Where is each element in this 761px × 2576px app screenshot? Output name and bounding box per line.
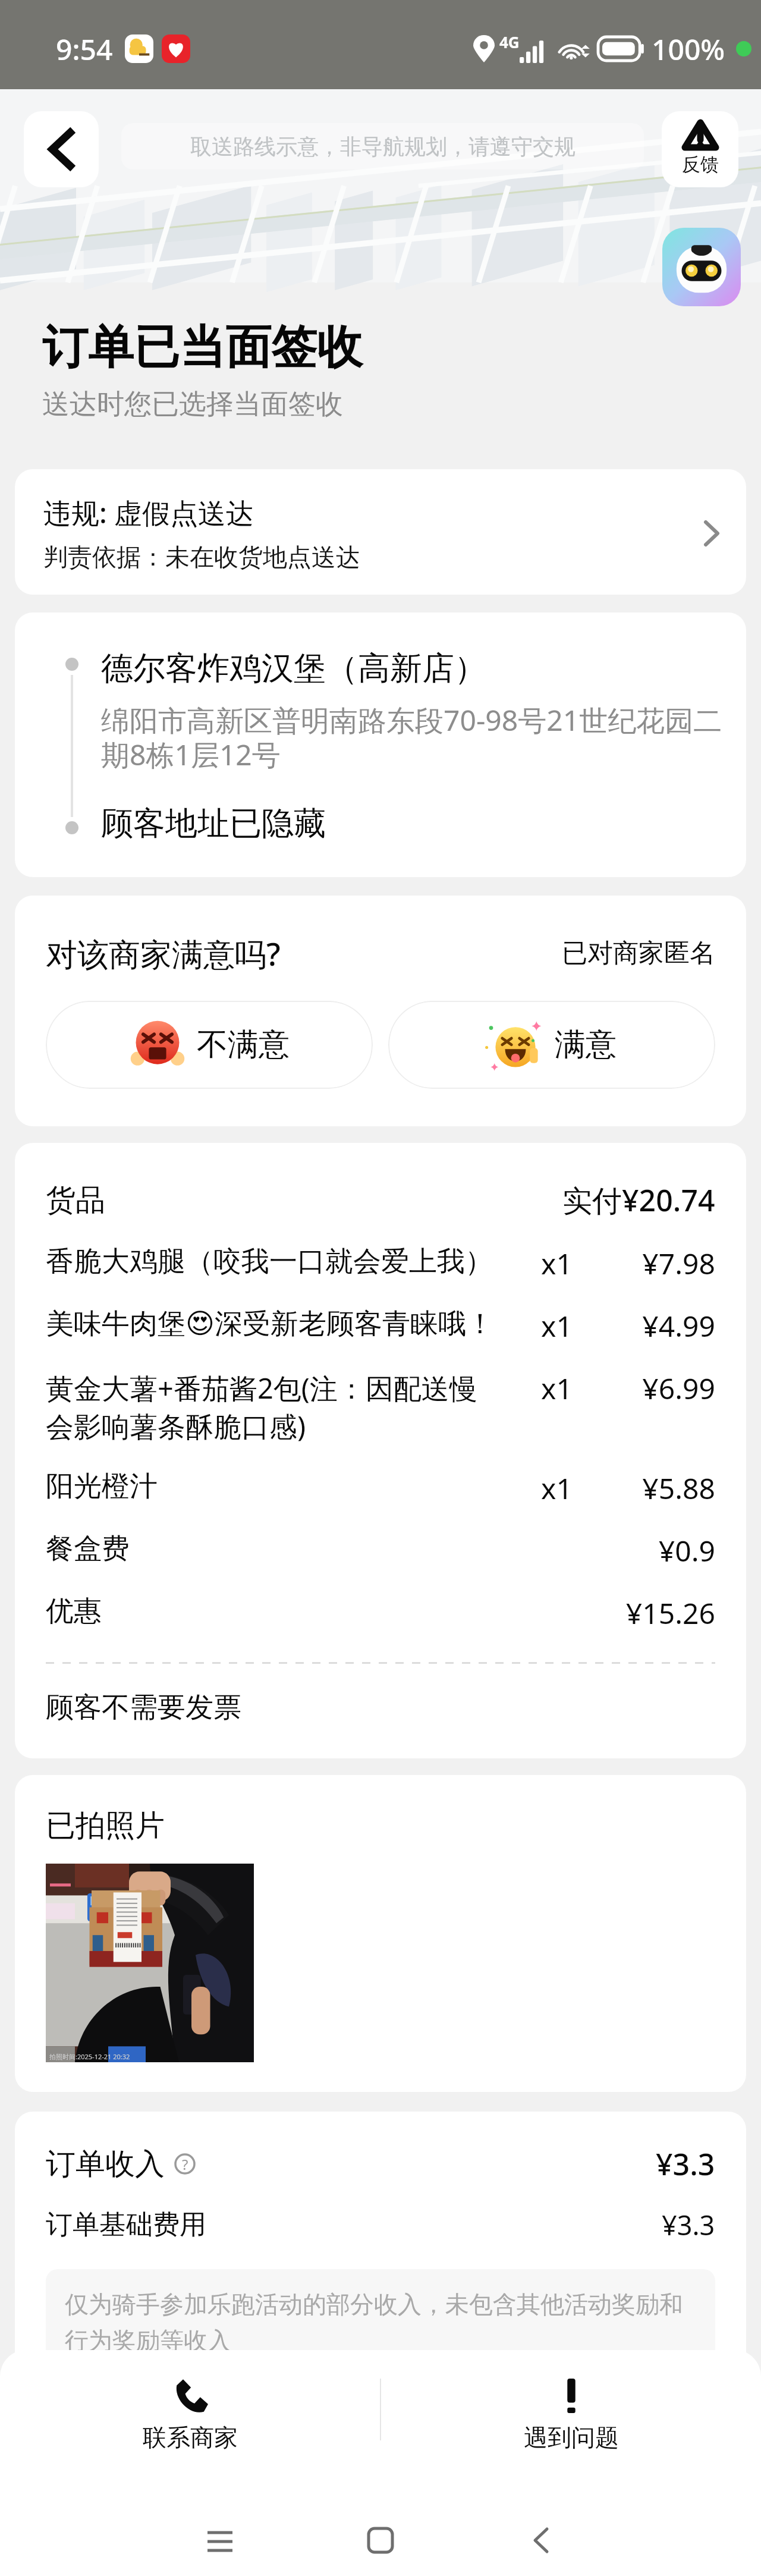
- button[interactable]: 反馈: [662, 111, 738, 187]
- staticText: 送达时您已选择当面签收: [42, 387, 343, 422]
- button[interactable]: Back: [517, 2517, 565, 2564]
- staticText: 4G: [499, 32, 520, 52]
- staticText: 餐盒费: [46, 1531, 130, 1566]
- staticText: 订单基础费用: [46, 2208, 206, 2242]
- button[interactable]: 不满意: [46, 1001, 373, 1089]
- staticText: 满意: [555, 1025, 617, 1064]
- staticText: 顾客不需要发票: [46, 1690, 241, 1725]
- staticText: 德尔客炸鸡汉堡（高新店）: [101, 648, 486, 689]
- staticText: x1: [541, 1369, 573, 1408]
- staticText: 违规: 虚假点送达: [43, 494, 254, 532]
- staticText: 货品: [46, 1182, 105, 1219]
- button[interactable]: Home: [357, 2517, 404, 2564]
- staticText: 判责依据：未在收货地点送达: [43, 542, 360, 573]
- staticText: ¥6.99: [642, 1369, 715, 1408]
- staticText: ¥0.9: [658, 1531, 715, 1570]
- staticText: 订单收入: [46, 2145, 165, 2183]
- staticText: 拍照时间:2025-12-21 20:32: [49, 2052, 130, 2061]
- staticText: 反馈: [682, 153, 719, 176]
- button[interactable]: 遇到问题: [381, 2350, 761, 2469]
- button[interactable]: 联系商家: [0, 2350, 380, 2469]
- staticText: 美味牛肉堡😍深受新老顾客青睐哦！: [46, 1306, 494, 1342]
- staticText: ¥15.26: [625, 1594, 715, 1632]
- button[interactable]: Delivery photo: [46, 1864, 254, 2062]
- staticText: x1: [541, 1244, 573, 1283]
- staticText: ?: [182, 2154, 188, 2174]
- staticText: ¥4.99: [642, 1306, 715, 1345]
- staticText: 9:54: [56, 30, 113, 68]
- staticText: ¥3.3: [662, 2207, 715, 2243]
- staticText: 对该商家满意吗?: [46, 932, 281, 975]
- staticText: ¥7.98: [642, 1244, 715, 1283]
- staticText: x1: [541, 1306, 573, 1345]
- button[interactable]: Back: [24, 111, 99, 187]
- staticText: 100%: [652, 30, 725, 68]
- button[interactable]: AI assistant: [662, 228, 741, 306]
- button[interactable]: 满意: [388, 1001, 715, 1089]
- button[interactable]: Recents: [196, 2517, 244, 2564]
- staticText: 顾客地址已隐藏: [101, 803, 326, 844]
- staticText: 黄金大薯+番茄酱2包(注：因配送慢会影响薯条酥脆口感): [46, 1369, 505, 1445]
- staticText: 遇到问题: [524, 2423, 619, 2452]
- staticText: 绵阳市高新区普明南路东段70-98号21世纪花园二期8栋1层12号: [101, 700, 722, 774]
- staticText: 阳光橙汁: [46, 1469, 158, 1504]
- staticText: 联系商家: [143, 2423, 238, 2452]
- staticText: 已对商家匿名: [562, 937, 715, 969]
- staticText: 仅为骑手参加乐跑活动的部分收入，未包含其他活动奖励和行为奖励等收入: [65, 2289, 696, 2356]
- staticText: 取送路线示意，非导航规划，请遵守交规: [190, 133, 576, 160]
- button[interactable]: 违规: 虚假点送达: [15, 469, 746, 595]
- staticText: ¥3.3: [656, 2144, 715, 2184]
- staticText: ¥5.88: [642, 1469, 715, 1507]
- staticText: 实付¥20.74: [562, 1180, 715, 1220]
- staticText: 订单已当面签收: [42, 319, 363, 376]
- staticText: 优惠: [46, 1594, 102, 1629]
- staticText: 已拍照片: [46, 1807, 165, 1845]
- staticText: 不满意: [197, 1025, 290, 1064]
- staticText: x1: [541, 1469, 573, 1507]
- staticText: 香脆大鸡腿（咬我一口就会爱上我）: [46, 1244, 493, 1279]
